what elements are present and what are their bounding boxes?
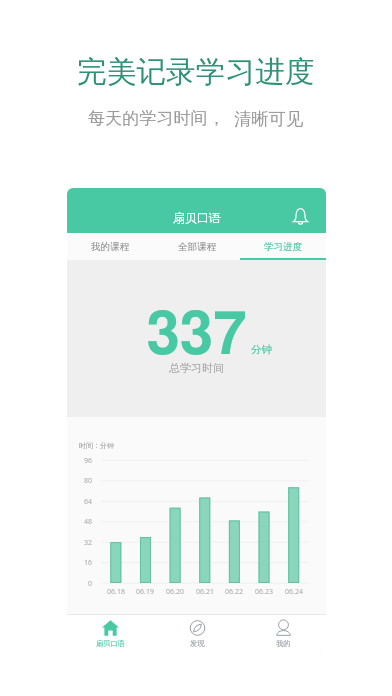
button[interactable]: 全部课程 [154,233,240,260]
staticText: 扇贝口语 [173,210,221,225]
staticText: 清晰可见 [234,108,304,130]
staticText: 每天的学习时间， [88,108,225,130]
staticText: 80 [84,476,93,486]
staticText: 06.20 [166,587,184,597]
staticText: 64 [84,497,93,507]
staticText: 337 [67,306,326,366]
staticText: 总学习时间 [67,361,326,375]
button[interactable]: 发现 [154,615,240,649]
staticText: 全部课程 [178,241,217,253]
button[interactable]: 我的 [240,615,326,649]
staticText: 06.19 [136,587,154,597]
staticText: 分钟 [251,343,272,356]
staticText: 48 [84,517,93,527]
staticText: 06.18 [107,587,125,597]
staticText: 时间：分钟 [79,441,114,450]
staticText: 06.23 [255,587,273,597]
staticText: 扇贝口语 [96,639,125,648]
staticText: 我的 [276,639,291,648]
button[interactable]: Notifications [293,208,308,225]
staticText: 16 [84,558,93,568]
staticText: 06.22 [225,587,243,597]
staticText: 06.24 [285,587,303,597]
button[interactable]: 我的课程 [67,233,154,260]
staticText: 学习进度 [264,241,303,253]
staticText: 发现 [190,639,205,648]
staticText: 我的课程 [91,241,130,253]
staticText: 32 [84,538,93,548]
staticText: 0 [88,579,93,589]
button[interactable]: 学习进度 [240,233,326,260]
staticText: 96 [84,456,93,466]
staticText: 完美记录学习进度 [77,53,315,90]
staticText: 06.21 [196,587,214,597]
button[interactable]: 扇贝口语 [67,615,154,649]
